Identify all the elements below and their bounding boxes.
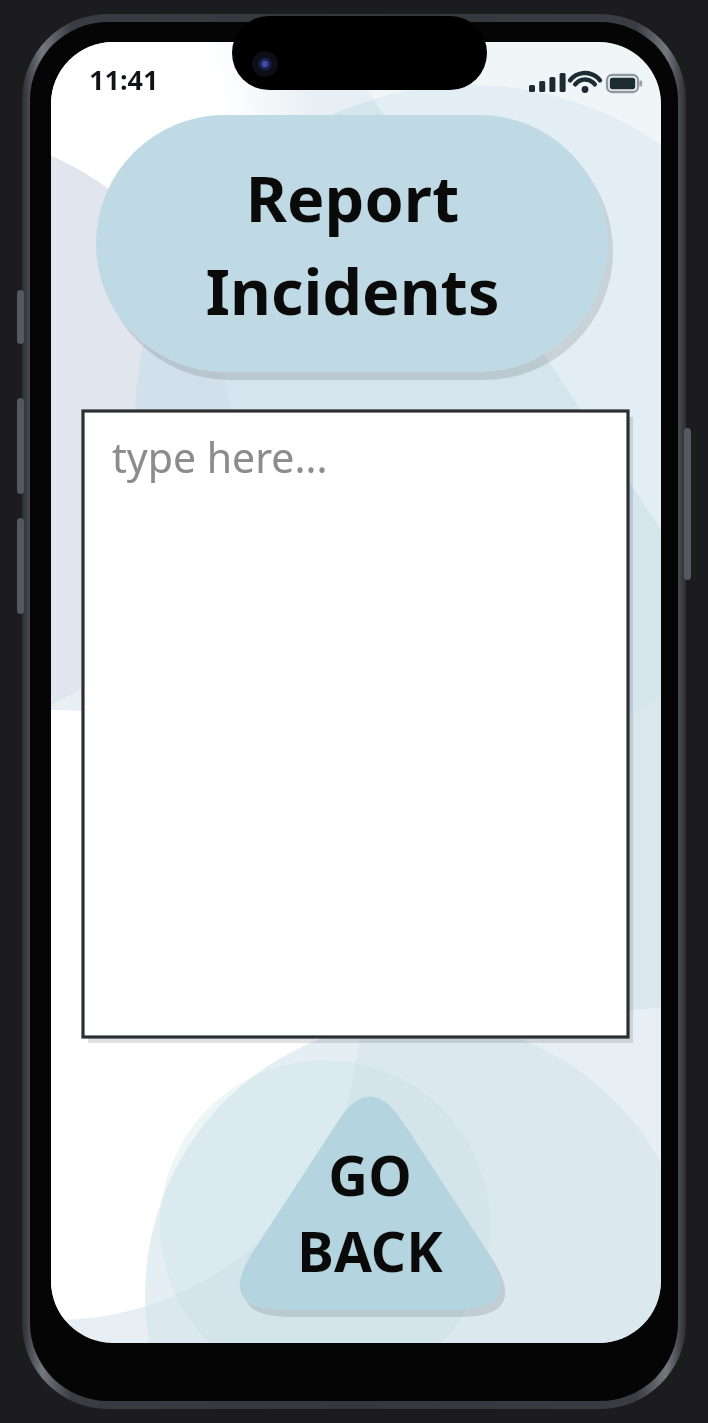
other: Signal, Wi-Fi and battery status: [529, 70, 641, 100]
button[interactable]: Go back: [215, 1072, 525, 1310]
staticText: 11:41: [89, 61, 159, 98]
button[interactable]: Report Incidents: [96, 115, 608, 372]
staticText: Report Incidents: [205, 155, 500, 333]
staticText: GO BACK: [297, 1137, 443, 1288]
button[interactable]: type here...: [83, 411, 628, 1037]
staticText: type here...: [112, 429, 328, 485]
